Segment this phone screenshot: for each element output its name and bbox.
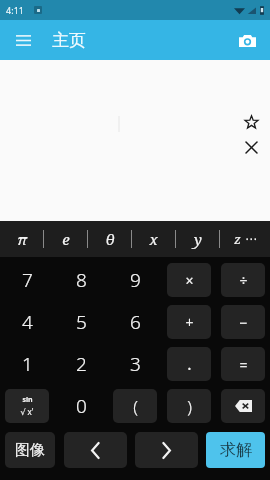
button[interactable]: 3 (108, 343, 162, 385)
button[interactable]: 求解 (206, 432, 265, 468)
staticText: θ (105, 229, 115, 249)
button[interactable]: + (167, 305, 211, 339)
staticText: × (185, 271, 194, 290)
button[interactable]: x (132, 221, 175, 257)
staticText: 0 (76, 393, 87, 419)
button[interactable]: 4 (0, 301, 54, 343)
staticText: y (194, 229, 202, 249)
staticText: z (234, 230, 241, 248)
button[interactable]: Camera (234, 27, 260, 53)
button[interactable]: θ (88, 221, 131, 257)
button[interactable]: Move left (64, 432, 127, 468)
button[interactable]: Close (240, 136, 262, 158)
staticText: 4 (22, 309, 33, 335)
button[interactable]: π (0, 221, 43, 257)
button[interactable]: . (167, 347, 211, 381)
staticText: 6 (130, 309, 141, 335)
staticText: 7 (22, 267, 33, 293)
button[interactable]: Backspace (221, 389, 265, 423)
button[interactable]: ) (167, 389, 211, 423)
button[interactable]: Move right (135, 432, 198, 468)
staticText: 求解 (220, 440, 252, 460)
staticText: 图像 (15, 441, 45, 460)
button[interactable]: 6 (108, 301, 162, 343)
button[interactable]: e (44, 221, 87, 257)
button[interactable]: − (221, 305, 265, 339)
staticText: x (149, 229, 158, 249)
button[interactable]: Functions (5, 389, 49, 423)
button[interactable]: Favorite (240, 111, 262, 133)
button[interactable]: ÷ (221, 263, 265, 297)
button[interactable]: Menu (12, 29, 34, 51)
staticText: 8 (76, 267, 87, 293)
staticText: . (187, 353, 192, 375)
button[interactable]: 8 (54, 259, 108, 301)
staticText: 9 (130, 267, 141, 293)
staticText: π (17, 229, 27, 249)
button[interactable]: 5 (54, 301, 108, 343)
button[interactable]: = (221, 347, 265, 381)
button[interactable]: z (220, 221, 270, 257)
staticText: 5 (76, 309, 87, 335)
button[interactable]: 0 (54, 385, 108, 427)
staticText: ⋯ (245, 232, 257, 246)
staticText: √ x' (20, 406, 34, 417)
staticText: sin (22, 395, 33, 405)
button[interactable]: 7 (0, 259, 54, 301)
button[interactable]: 图像 (5, 432, 55, 468)
staticText: 4:11 (6, 4, 24, 16)
staticText: 2 (76, 351, 87, 377)
button[interactable]: y (176, 221, 219, 257)
staticText: − (239, 313, 248, 332)
staticText: 主页 (52, 30, 86, 51)
staticText: ÷ (239, 271, 248, 290)
staticText: ) (187, 395, 192, 418)
button[interactable]: 1 (0, 343, 54, 385)
staticText: e (62, 229, 70, 249)
staticText: = (239, 355, 248, 374)
button[interactable]: × (167, 263, 211, 297)
button[interactable]: ( (113, 389, 157, 423)
button[interactable]: 9 (108, 259, 162, 301)
staticText: 1 (22, 351, 33, 377)
staticText: 3 (130, 351, 141, 377)
staticText: + (185, 313, 194, 332)
button[interactable]: 2 (54, 343, 108, 385)
staticText: ( (133, 395, 138, 418)
